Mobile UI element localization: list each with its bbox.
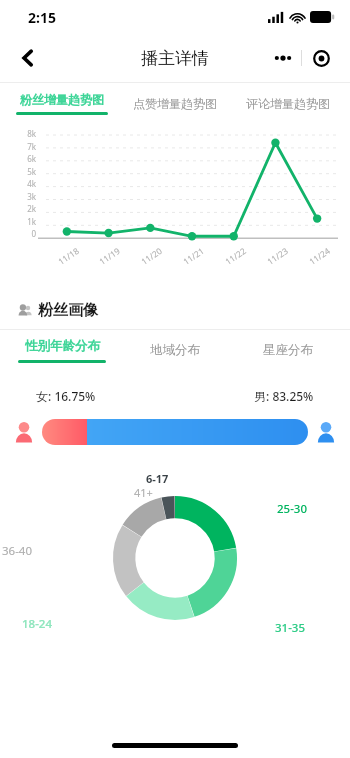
staticText: 地域分布 xyxy=(150,342,200,358)
staticText: 11/21 xyxy=(181,245,207,268)
staticText: 3k xyxy=(18,191,36,202)
staticText: 粉丝画像 xyxy=(38,301,98,320)
staticText: 6k xyxy=(18,153,36,164)
button[interactable]: 点赞增量趋势图 xyxy=(118,83,231,123)
staticText: 5k xyxy=(18,166,36,177)
staticText: 11/20 xyxy=(139,245,165,268)
button[interactable]: 评论增量趋势图 xyxy=(231,83,344,123)
staticText: 2k xyxy=(18,203,36,214)
staticText: 性别年龄分布 xyxy=(25,338,100,354)
staticText: 11/24 xyxy=(307,245,333,268)
button[interactable]: 性别年龄分布 xyxy=(6,330,118,370)
staticText: 评论增量趋势图 xyxy=(246,96,330,111)
button[interactable]: More xyxy=(264,43,340,73)
staticText: 4k xyxy=(18,178,36,189)
staticText: 1k xyxy=(18,216,36,227)
staticText: 播主详情 xyxy=(141,48,209,69)
button[interactable]: 地域分布 xyxy=(118,330,231,370)
staticText: 6-17 xyxy=(146,471,169,486)
staticText: 8k xyxy=(18,128,36,139)
staticText: 女: 16.75% xyxy=(36,388,96,404)
staticText: 11/18 xyxy=(56,245,82,268)
other: More xyxy=(264,43,301,73)
staticText: 点赞增量趋势图 xyxy=(133,96,217,111)
staticText: 11/22 xyxy=(223,245,249,268)
button[interactable]: Back xyxy=(8,38,48,78)
staticText: 31-35 xyxy=(275,620,306,636)
staticText: 0 xyxy=(18,228,36,239)
button[interactable]: 星座分布 xyxy=(231,330,344,370)
staticText: 25-30 xyxy=(277,501,308,517)
staticText: 41+ xyxy=(134,485,153,500)
other: Close xyxy=(302,43,340,73)
button[interactable]: 粉丝增量趋势图 xyxy=(6,83,118,123)
staticText: 11/19 xyxy=(97,245,123,268)
staticText: 18-24 xyxy=(22,616,53,632)
staticText: 7k xyxy=(18,141,36,152)
staticText: 11/23 xyxy=(265,245,291,268)
staticText: 星座分布 xyxy=(263,342,313,358)
staticText: 男: 83.25% xyxy=(254,388,314,404)
staticText: 粉丝增量趋势图 xyxy=(20,92,104,107)
staticText: 36-40 xyxy=(2,543,33,559)
staticText: 2:15 xyxy=(28,8,56,27)
